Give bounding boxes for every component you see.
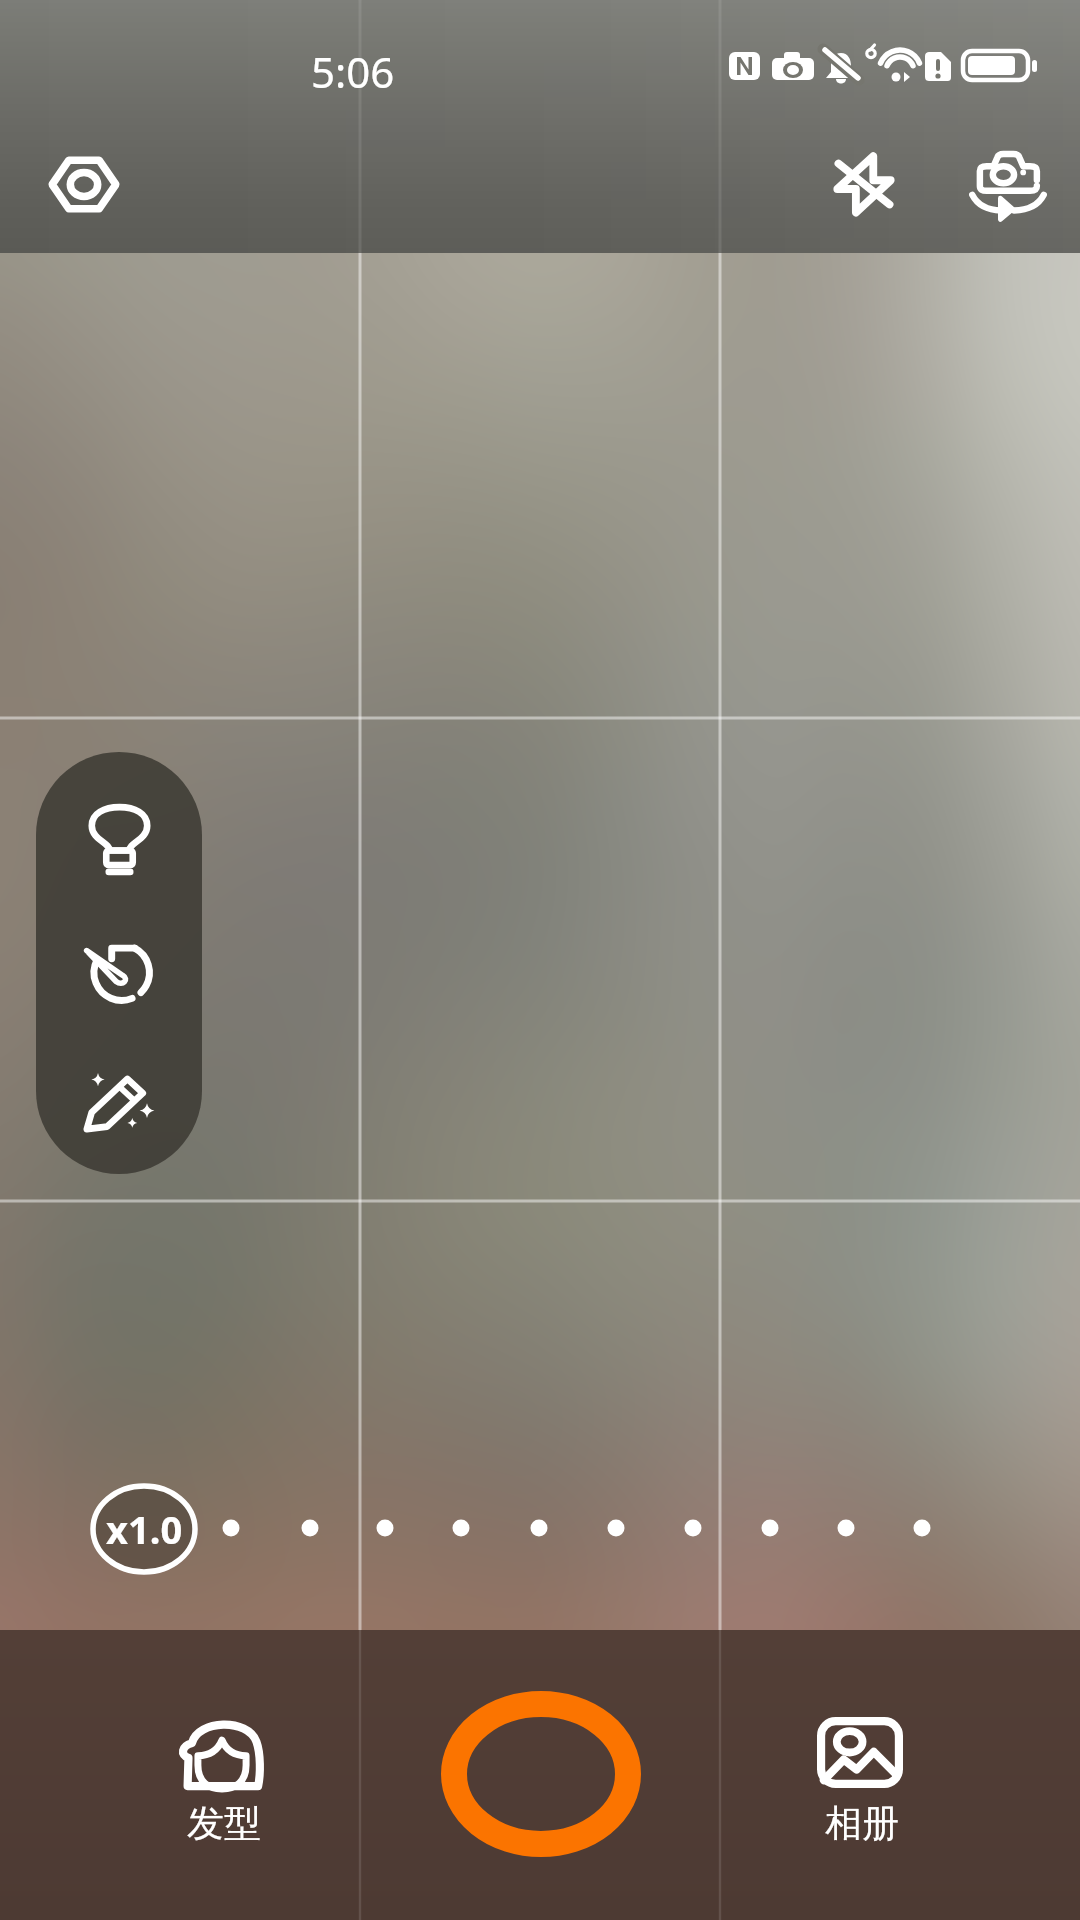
staticText: 相册 (825, 1800, 899, 1847)
button[interactable]: 发型 (132, 1700, 312, 1860)
button[interactable]: Shutter (425, 1675, 657, 1873)
staticText: x1.0 (106, 1503, 183, 1555)
button[interactable]: Beauty edit (45, 1030, 193, 1170)
button[interactable]: Zoom 1.0x (90, 1483, 198, 1575)
button[interactable]: Flashlight (45, 769, 193, 909)
button[interactable]: Switch camera (948, 124, 1068, 244)
button[interactable]: Settings (24, 124, 144, 244)
staticText: 5:06 (311, 43, 395, 100)
button[interactable]: Flash off (804, 124, 924, 244)
staticText: 发型 (187, 1800, 261, 1847)
button[interactable]: 相册 (770, 1700, 950, 1860)
button[interactable]: Timer (45, 899, 193, 1039)
